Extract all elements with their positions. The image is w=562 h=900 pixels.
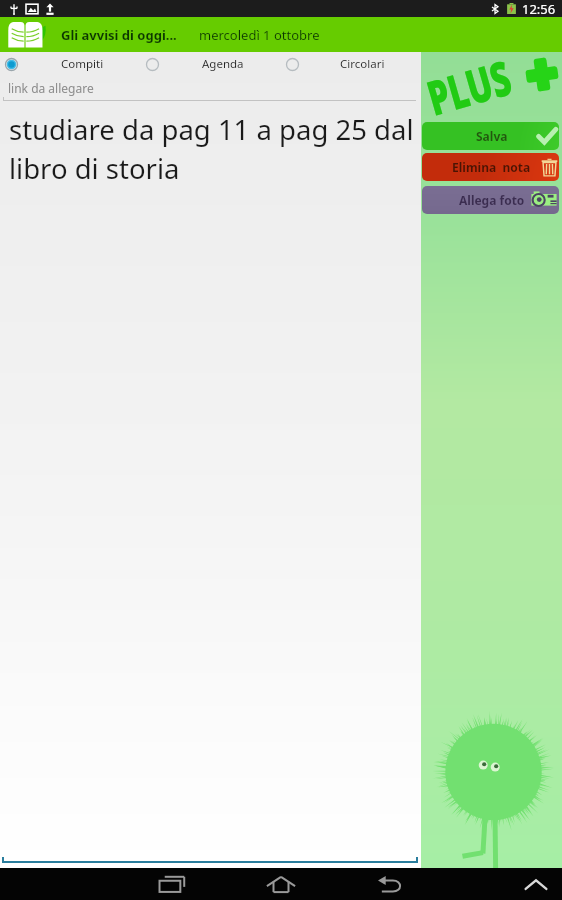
button[interactable]: Salva bbox=[422, 122, 559, 150]
staticText: link da allegare bbox=[8, 80, 94, 96]
button[interactable]: Circolari bbox=[281, 52, 421, 76]
staticText: Elimina nota bbox=[452, 159, 531, 175]
staticText: 12:56 bbox=[522, 0, 556, 17]
staticText: Compiti bbox=[61, 56, 104, 72]
staticText: Allega foto bbox=[459, 192, 525, 208]
button[interactable]: Agenda bbox=[141, 52, 281, 76]
staticText: Gli avvisi di oggi... bbox=[61, 26, 177, 44]
button[interactable]: Elimina nota bbox=[422, 153, 559, 181]
staticText: Agenda bbox=[202, 56, 244, 72]
staticText: mercoledì 1 ottobre bbox=[199, 26, 320, 44]
button[interactable] bbox=[6, 17, 44, 52]
staticText: PLUS bbox=[419, 43, 519, 130]
button[interactable]: Home bbox=[249, 868, 313, 900]
button[interactable]: Allega foto bbox=[422, 186, 559, 214]
button[interactable]: Expand bbox=[512, 868, 560, 900]
button[interactable]: Recent apps bbox=[140, 868, 204, 900]
staticText: Circolari bbox=[340, 56, 385, 72]
button[interactable]: Back bbox=[358, 868, 422, 900]
staticText: Salva bbox=[476, 128, 508, 144]
button[interactable]: Compiti bbox=[0, 52, 141, 76]
staticText: studiare da pag 11 a pag 25 dal libro di… bbox=[9, 111, 419, 187]
